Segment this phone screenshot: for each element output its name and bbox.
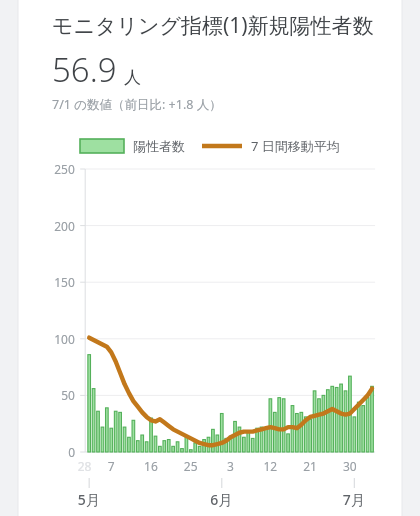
other: 陽性者数の凡例	[80, 139, 124, 153]
button[interactable]: 陽性者数の凡例	[18, 137, 402, 155]
staticText: 56.9	[52, 47, 117, 92]
staticText: 陽性者数	[133, 138, 185, 154]
staticText: 人	[124, 67, 141, 88]
button[interactable]: モニタリング指標(1)新規陽性者数	[18, 0, 402, 516]
other: 7日間移動平均の凡例	[202, 139, 242, 153]
staticText: 7/1 の数値（前日比: +1.8 人）	[52, 96, 250, 113]
staticText: 7 日間移動平均	[251, 137, 340, 155]
staticText: モニタリング指標(1)新規陽性者数	[52, 11, 384, 40]
